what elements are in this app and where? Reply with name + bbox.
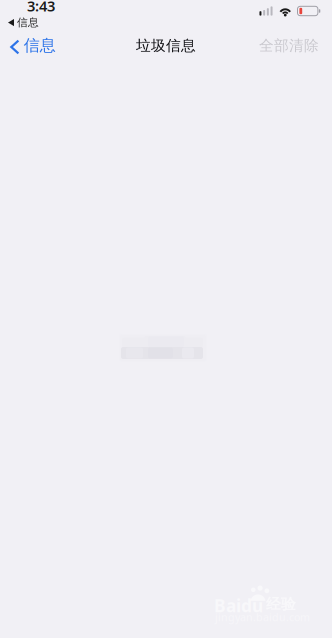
staticText: 信息 xyxy=(17,16,39,29)
button[interactable]: 信息 xyxy=(0,31,62,60)
staticText: 信息 xyxy=(24,36,56,55)
staticText: 经验 xyxy=(266,595,296,613)
staticText: 3:43 xyxy=(27,0,55,15)
staticText: Baidu xyxy=(214,594,263,617)
staticText: 垃圾信息 xyxy=(136,36,196,54)
button[interactable]: 全部清除 xyxy=(253,31,332,59)
staticText: 全部清除 xyxy=(259,36,319,54)
